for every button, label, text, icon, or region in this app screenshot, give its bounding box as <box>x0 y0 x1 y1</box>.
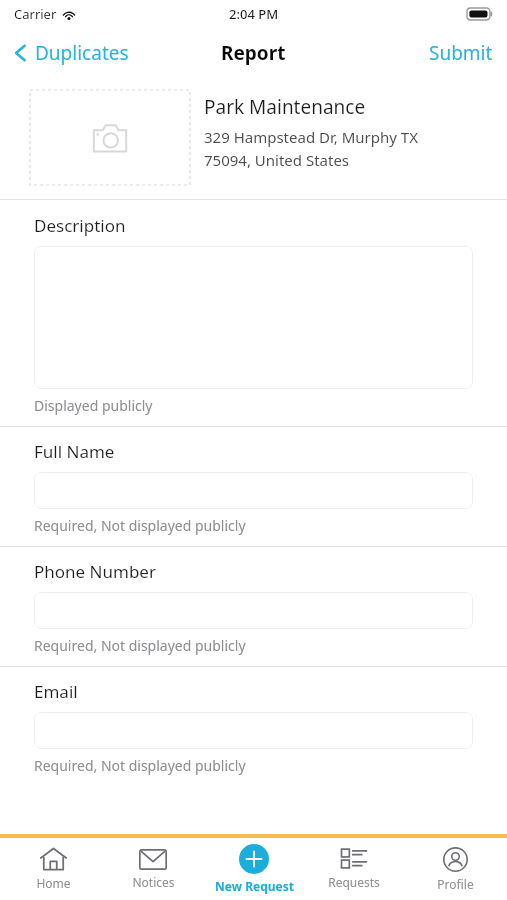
button[interactable]: Submit <box>415 32 507 74</box>
staticText: Required, Not displayed publicly <box>34 516 246 535</box>
staticText: Email <box>34 680 78 703</box>
staticText: Description <box>34 214 126 237</box>
staticText: Required, Not displayed publicly <box>34 756 246 775</box>
button[interactable]: Notices <box>105 845 201 894</box>
staticText: Home <box>36 875 71 891</box>
button[interactable]: Profile <box>407 843 503 896</box>
staticText: Carrier <box>14 5 57 23</box>
button[interactable]: New Request <box>206 840 302 898</box>
button[interactable]: Email <box>34 712 473 749</box>
button[interactable]: Home <box>5 843 101 895</box>
staticText: 2:04 PM <box>229 5 279 23</box>
staticText: Required, Not displayed publicly <box>34 636 246 655</box>
staticText: Park Maintenance <box>204 94 366 120</box>
staticText: Report <box>221 40 286 66</box>
button[interactable]: Phone Number <box>34 592 473 629</box>
staticText: Profile <box>437 876 474 892</box>
staticText: Displayed publicly <box>34 396 153 415</box>
button[interactable]: Duplicates <box>0 34 139 72</box>
staticText: Requests <box>328 874 380 890</box>
staticText: 75094, United States <box>204 150 350 170</box>
button[interactable]: Add photo <box>30 90 190 185</box>
button[interactable]: Full Name <box>34 472 473 509</box>
staticText: New Request <box>215 878 294 894</box>
staticText: Duplicates <box>35 40 129 66</box>
staticText: Phone Number <box>34 560 156 583</box>
staticText: 329 Hampstead Dr, Murphy TX <box>204 127 418 147</box>
staticText: Notices <box>132 874 175 890</box>
staticText: Full Name <box>34 440 115 463</box>
button[interactable]: Requests <box>306 844 402 894</box>
